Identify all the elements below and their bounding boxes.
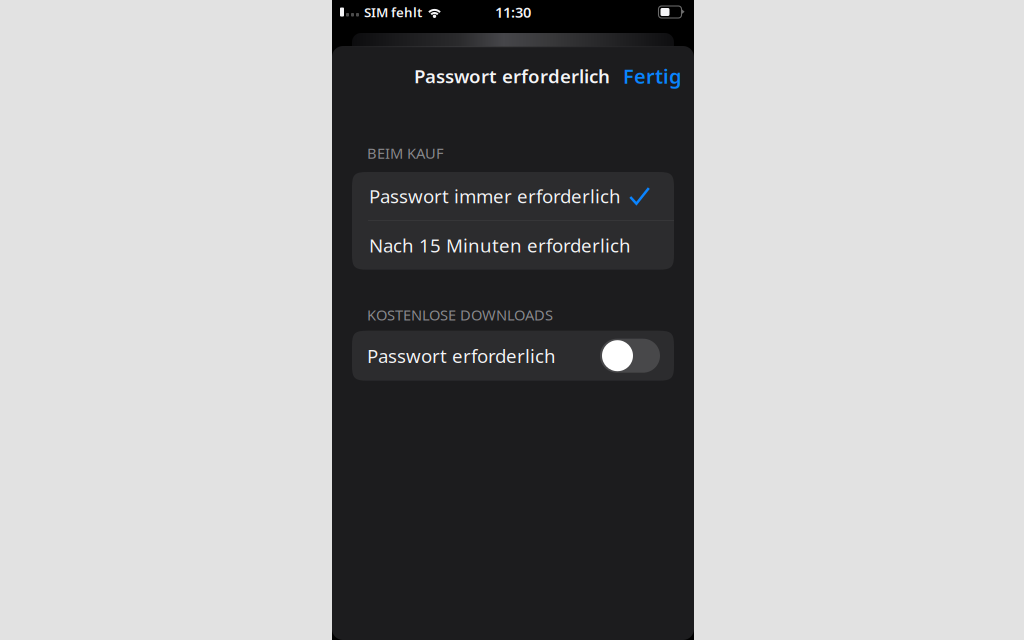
button[interactable]: Passwort immer erforderlich: [352, 172, 674, 220]
staticText: Passwort erforderlich: [414, 64, 610, 88]
staticText: SIM fehlt: [364, 3, 422, 21]
button[interactable]: Fertig: [610, 56, 694, 96]
staticText: KOSTENLOSE DOWNLOADS: [367, 305, 553, 324]
staticText: Fertig: [623, 63, 682, 89]
staticText: 11:30: [495, 2, 531, 22]
button[interactable]: Passwort erforderlich: [600, 339, 660, 373]
staticText: Nach 15 Minuten erforderlich: [369, 233, 631, 258]
staticText: BEIM KAUF: [367, 143, 444, 163]
staticText: Passwort immer erforderlich: [369, 184, 621, 208]
staticText: Passwort erforderlich: [367, 343, 556, 368]
button[interactable]: Nach 15 Minuten erforderlich: [352, 221, 674, 270]
